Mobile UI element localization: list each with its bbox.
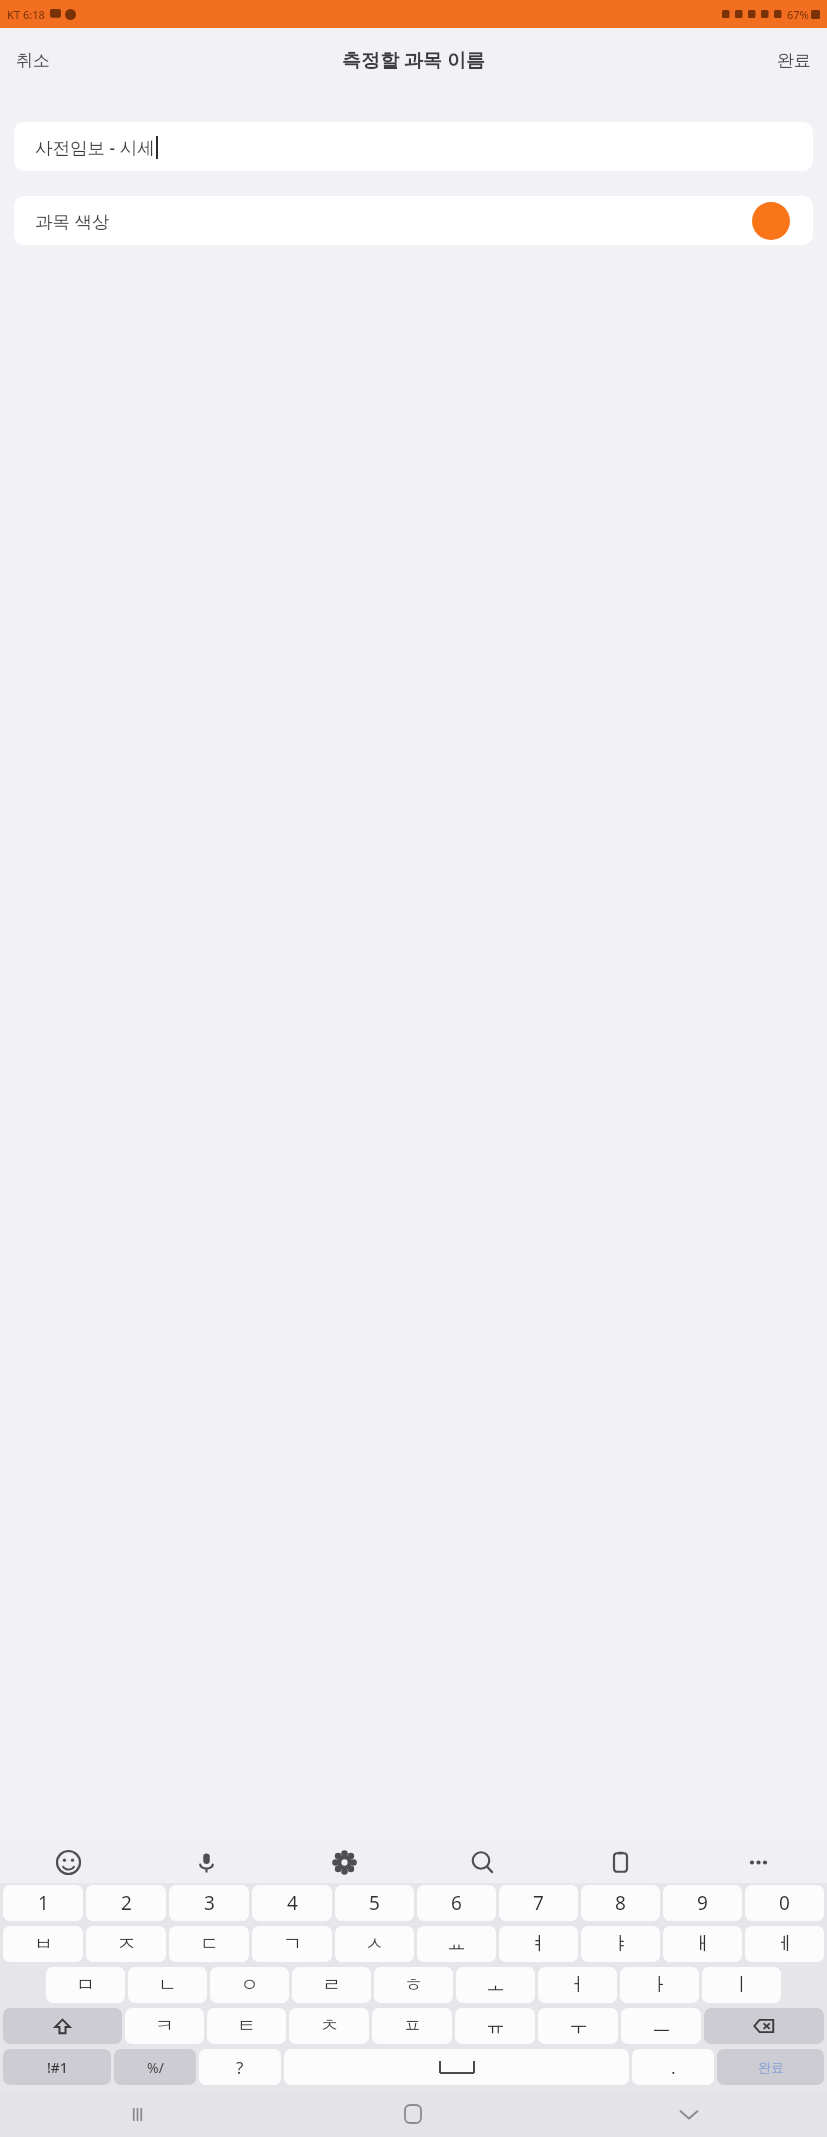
button[interactable]: ㅛ [417,1926,496,1962]
button[interactable]: 과목 색상 [14,196,813,245]
button[interactable]: ㄱ [252,1926,332,1962]
button[interactable]: 취소 [0,40,66,81]
button[interactable]: ㅕ [499,1926,578,1962]
button[interactable]: ㅣ [702,1967,781,2003]
staticText: 과목 색상 [35,209,110,233]
button[interactable]: ㅈ [86,1926,166,1962]
button[interactable]: Space [284,2049,629,2085]
staticText: 9 [697,1890,708,1916]
staticText: ㅏ [650,1973,669,1997]
button[interactable]: ㄴ [128,1967,207,2003]
staticText: ㅣ [732,1973,751,1997]
staticText: 2 [121,1890,132,1916]
button[interactable]: ㅁ [46,1967,125,2003]
button[interactable]: 사전임보 - 시세 [14,122,813,171]
button[interactable]: 9 [663,1885,742,1921]
staticText: ㅌ [237,2014,256,2038]
staticText: ㅑ [611,1932,630,1956]
button[interactable]: 0 [745,1885,824,1921]
staticText: ㅊ [320,2014,339,2038]
button[interactable]: ㅂ [3,1926,83,1962]
staticText: 5 [369,1890,380,1916]
staticText: ㅐ [693,1932,712,1956]
button[interactable]: ㅠ [455,2008,535,2044]
staticText: ㅋ [155,2014,174,2038]
staticText: ㅕ [529,1932,548,1956]
staticText: ㅅ [365,1932,384,1956]
staticText: ㅓ [568,1973,587,1997]
staticText: 7 [533,1890,544,1916]
button[interactable]: ㅌ [207,2008,286,2044]
staticText: ㅔ [775,1932,794,1956]
button[interactable]: ㅋ [125,2008,204,2044]
button[interactable]: 1 [3,1885,83,1921]
button[interactable]: Shift [3,2008,122,2044]
staticText: ㅗ [486,1973,505,1997]
button[interactable]: ㅏ [620,1967,699,2003]
staticText: ㄴ [158,1973,177,1997]
button[interactable]: ㅍ [372,2008,452,2044]
staticText: ㅂ [34,1932,53,1956]
staticText: 1 [38,1890,49,1916]
button[interactable]: Backspace [704,2008,824,2044]
button[interactable]: 3 [169,1885,249,1921]
staticText: ㅜ [569,2014,588,2038]
staticText: ㅎ [404,1973,423,1997]
staticText: ㅡ [652,2014,671,2038]
button[interactable]: More options [689,1841,827,1883]
button[interactable]: 완료 [761,40,827,81]
staticText: 완료 [777,50,811,71]
staticText: 측정할 과목 이름 [342,47,485,73]
button[interactable]: Emoji [0,1841,137,1883]
button[interactable]: 4 [252,1885,332,1921]
button[interactable]: 완료 [717,2049,824,2085]
button[interactable]: !#1 [3,2049,111,2085]
staticText: 3 [204,1890,215,1916]
button[interactable]: 6 [417,1885,496,1921]
button[interactable]: Settings [275,1841,413,1883]
button[interactable]: ㄷ [169,1926,249,1962]
button[interactable]: 7 [499,1885,578,1921]
staticText: ㅁ [76,1973,95,1997]
button[interactable]: . [632,2049,714,2085]
button[interactable]: 5 [335,1885,414,1921]
button[interactable]: ? [199,2049,281,2085]
staticText: 6 [451,1890,462,1916]
button[interactable]: ㅎ [374,1967,453,2003]
button[interactable]: Hide keyboard [551,2091,827,2137]
button[interactable]: 2 [86,1885,166,1921]
button[interactable]: Search [413,1841,551,1883]
button[interactable]: ㅐ [663,1926,742,1962]
button[interactable]: ㅅ [335,1926,414,1962]
staticText: ㄹ [322,1973,341,1997]
button[interactable]: ㅇ [210,1967,289,2003]
staticText: 67% [787,7,809,22]
staticText: ? [236,2056,244,2079]
button[interactable]: ㅜ [538,2008,618,2044]
staticText: ㅇ [240,1973,259,1997]
button[interactable]: ㅡ [621,2008,701,2044]
button[interactable]: Voice input [137,1841,275,1883]
button[interactable]: ㅓ [538,1967,617,2003]
staticText: . [671,2056,676,2079]
button[interactable]: Pick subject color [752,202,790,240]
staticText: KT 6:18 [7,7,45,22]
button[interactable]: ㅗ [456,1967,535,2003]
button[interactable]: 8 [581,1885,660,1921]
staticText: 완료 [758,2059,784,2075]
staticText: ㅍ [403,2014,422,2038]
button[interactable]: ㅔ [745,1926,824,1962]
staticText: %/ [147,2058,164,2077]
staticText: ㅛ [447,1932,466,1956]
button[interactable]: ㅊ [289,2008,369,2044]
button[interactable]: ㅑ [581,1926,660,1962]
button[interactable]: ㄹ [292,1967,371,2003]
button[interactable]: Home [275,2091,551,2137]
staticText: 취소 [16,50,50,71]
staticText: 4 [287,1890,298,1916]
staticText: !#1 [47,2058,68,2077]
button[interactable]: %/ [114,2049,196,2085]
button[interactable]: Recents [0,2091,275,2137]
button[interactable]: Clipboard [551,1841,689,1883]
staticText: ㅈ [117,1932,136,1956]
